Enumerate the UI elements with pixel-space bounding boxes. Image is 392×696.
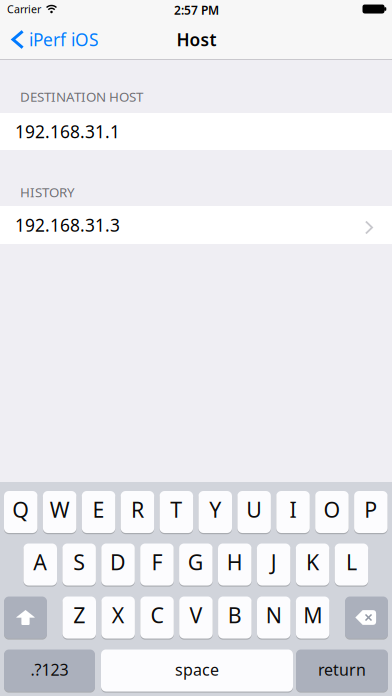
staticText: H (227, 548, 243, 576)
staticText: A (33, 548, 47, 576)
staticText: HISTORY (20, 183, 75, 201)
staticText: T (170, 495, 182, 524)
staticText: U (246, 495, 262, 524)
button[interactable]: Shift (4, 595, 47, 639)
button[interactable]: Delete (345, 595, 388, 639)
staticText: S (73, 548, 85, 576)
button[interactable]: X (101, 595, 135, 639)
staticText: J (271, 548, 277, 576)
staticText: 192.168.31.3 (15, 213, 120, 236)
staticText: Z (73, 601, 85, 629)
staticText: O (323, 495, 340, 524)
button[interactable]: Z (62, 595, 96, 639)
staticText: iPerf iOS (29, 28, 99, 51)
staticText: W (50, 495, 70, 524)
button[interactable]: B (218, 595, 252, 639)
button[interactable]: Y (198, 490, 232, 534)
staticText: E (92, 495, 104, 524)
staticText: G (188, 548, 204, 576)
button[interactable]: return (296, 648, 388, 692)
staticText: M (303, 601, 322, 629)
button[interactable]: W (43, 490, 76, 534)
staticText: X (112, 601, 125, 629)
button[interactable]: Q (4, 490, 37, 534)
staticText: B (228, 601, 242, 629)
button[interactable]: iPerf iOS (0, 20, 109, 59)
staticText: Q (12, 495, 29, 524)
staticText: .?123 (30, 659, 68, 680)
staticText: DESTINATION HOST (20, 88, 143, 105)
staticText: N (266, 601, 282, 629)
button[interactable]: A (23, 542, 57, 586)
staticText: R (131, 495, 144, 524)
button[interactable]: N (257, 595, 290, 639)
button[interactable]: C (140, 595, 174, 639)
staticText: K (306, 548, 319, 576)
button[interactable]: R (121, 490, 154, 534)
staticText: D (110, 548, 126, 576)
button[interactable]: G (179, 542, 213, 586)
button[interactable]: .?123 (4, 648, 95, 692)
button[interactable]: V (179, 595, 213, 639)
staticText: return (318, 659, 366, 680)
button[interactable]: I (276, 490, 310, 534)
button[interactable]: P (354, 490, 388, 534)
button[interactable]: L (335, 542, 368, 586)
staticText: I (290, 495, 297, 524)
staticText: space (175, 659, 219, 680)
button[interactable]: O (315, 490, 349, 534)
button[interactable]: 192.168.31.3 (0, 206, 392, 244)
button[interactable]: U (237, 490, 271, 534)
staticText: 192.168.31.1 (15, 120, 120, 143)
button[interactable]: K (296, 542, 329, 586)
staticText: C (151, 601, 164, 629)
staticText: P (364, 495, 377, 524)
button[interactable]: F (140, 542, 174, 586)
staticText: L (346, 548, 357, 576)
button[interactable]: M (296, 595, 329, 639)
button[interactable]: S (62, 542, 96, 586)
button[interactable]: D (101, 542, 135, 586)
staticText: Carrier (7, 2, 41, 16)
staticText: 2:57 PM (174, 2, 219, 18)
button[interactable]: T (160, 490, 193, 534)
staticText: Host (176, 28, 216, 51)
button[interactable]: J (257, 542, 290, 586)
staticText: F (151, 548, 162, 576)
button[interactable]: E (82, 490, 115, 534)
staticText: Y (209, 495, 221, 524)
button[interactable]: H (218, 542, 251, 586)
staticText: V (189, 601, 202, 629)
button[interactable]: space (101, 648, 293, 692)
